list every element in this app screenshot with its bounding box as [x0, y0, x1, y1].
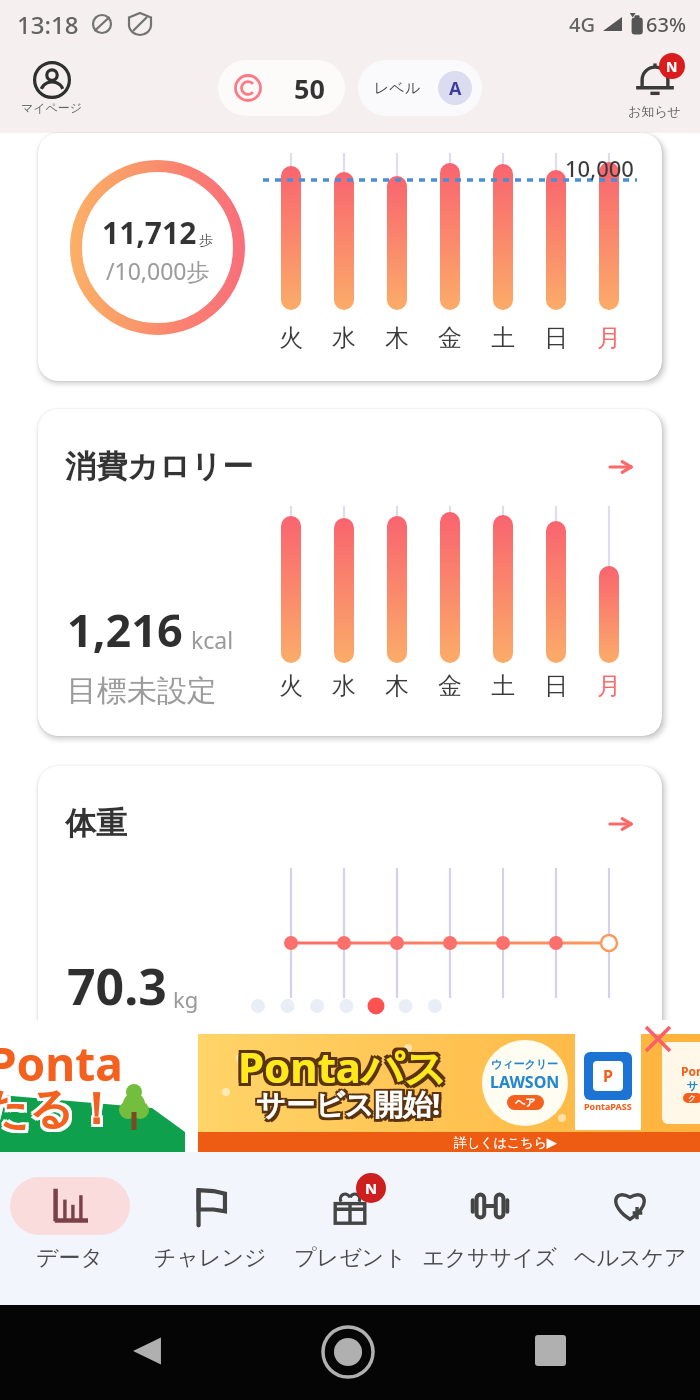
staticText: 木 [385, 671, 409, 701]
staticText: Pontaパス [241, 1041, 450, 1098]
staticText: 体重 [65, 804, 127, 843]
staticText: チャレンジ [154, 1244, 267, 1272]
staticText: 70.3 [67, 952, 167, 1020]
staticText: レベル [374, 79, 421, 98]
button[interactable]: 詳細を見る [609, 455, 633, 479]
staticText: サービス開始! [259, 1087, 444, 1127]
staticText: サービス開始! [259, 1084, 444, 1124]
button[interactable]: 戻る [131, 1334, 165, 1368]
staticText: 水 [332, 323, 356, 353]
staticText: プレゼント [294, 1244, 407, 1272]
staticText: 火 [279, 671, 303, 701]
staticText: A [449, 76, 462, 101]
staticText: たる！ [0, 1080, 122, 1135]
staticText: ウィークリー [491, 1057, 559, 1071]
staticText: Pontaパス [238, 1041, 447, 1098]
staticText: たる！ [0, 1082, 122, 1137]
staticText: Ponta [0, 1030, 123, 1093]
staticText: 4G [569, 11, 595, 38]
button[interactable]: マイページ [21, 61, 83, 115]
staticText: サービス開始! [259, 1082, 444, 1122]
staticText: 歩 [199, 232, 213, 250]
staticText: kg [173, 984, 199, 1014]
button[interactable]: 履歴 [535, 1335, 566, 1366]
button[interactable]: 体重 [38, 766, 662, 1066]
staticText: N [666, 57, 678, 76]
staticText: エクササイズ [422, 1244, 558, 1272]
staticText: Pontaパス [235, 1038, 444, 1095]
staticText: kcal [191, 624, 234, 655]
button[interactable]: お知らせ [628, 57, 681, 119]
staticText: LAWSON [490, 1071, 560, 1093]
staticText: たる！ [0, 1085, 119, 1140]
staticText: サービス開始! [254, 1087, 439, 1127]
button[interactable]: Pontaパス [198, 1034, 700, 1152]
staticText: Ponta [0, 1035, 126, 1098]
staticText: サービス開始! [256, 1082, 441, 1122]
staticText: 金 [438, 323, 462, 353]
staticText: サービス開始! [256, 1084, 441, 1124]
staticText: Ponta [0, 1035, 123, 1098]
staticText: たる！ [0, 1082, 117, 1137]
staticText: 水 [332, 671, 356, 701]
staticText: 土 [491, 323, 515, 353]
button[interactable]: ヘルスケア [560, 1152, 700, 1305]
staticText: /10,000歩 [106, 255, 210, 286]
staticText: 月 [597, 323, 621, 353]
staticText: たる！ [0, 1080, 117, 1135]
staticText: 土 [491, 671, 515, 701]
staticText: サービス開始! [254, 1082, 439, 1122]
staticText: ク [688, 1093, 697, 1103]
button[interactable]: ホーム [321, 1325, 375, 1379]
staticText: Pontaパス [238, 1038, 447, 1095]
staticText: 火 [279, 323, 303, 353]
staticText: Pontaパス [235, 1035, 444, 1092]
button[interactable]: 50 [218, 60, 345, 116]
staticText: 月 [597, 671, 621, 701]
staticText: Ponta [0, 1032, 126, 1095]
button[interactable]: データ [0, 1152, 140, 1305]
staticText: サービス開始! [256, 1087, 441, 1127]
button[interactable]: 11,712 [38, 133, 662, 381]
button[interactable]: 閉じる [643, 1024, 673, 1054]
staticText: たる！ [0, 1082, 119, 1137]
button[interactable]: N [280, 1152, 420, 1305]
staticText: たる！ [0, 1085, 117, 1140]
staticText: PontaPASS [584, 1100, 632, 1112]
button[interactable]: 詳細を見る [609, 812, 633, 836]
staticText: ヘア [515, 1096, 536, 1109]
staticText: 1,216 [67, 599, 183, 660]
staticText: マイページ [21, 100, 83, 115]
staticText: N [365, 1178, 378, 1198]
staticText: 13:18 [17, 8, 79, 41]
staticText: Pontaパス [235, 1041, 444, 1098]
button[interactable]: 消費カロリー [38, 409, 662, 736]
staticText: 10,000 [565, 153, 634, 183]
staticText: 木 [385, 323, 409, 353]
button[interactable]: チャレンジ [140, 1152, 280, 1305]
staticText: 50 [294, 70, 325, 107]
staticText: P [603, 1065, 613, 1087]
staticText: 消費カロリー [65, 447, 254, 486]
staticText: 11,712 [102, 212, 197, 253]
staticText: Ponta [0, 1030, 121, 1093]
button[interactable]: レベル [358, 60, 482, 116]
staticText: Ponta [0, 1030, 126, 1093]
staticText: 日 [544, 323, 568, 353]
staticText: Pontaパス [238, 1035, 447, 1092]
staticText: たる！ [0, 1085, 122, 1140]
staticText: Pon [681, 1063, 700, 1079]
staticText: Pontaパス [241, 1035, 450, 1092]
staticText: ヘルスケア [574, 1244, 687, 1272]
staticText: 63% [646, 11, 686, 38]
staticText: お知らせ [628, 103, 681, 119]
staticText: 日 [544, 671, 568, 701]
staticText: Ponta [0, 1032, 123, 1095]
staticText: たる！ [0, 1080, 119, 1135]
staticText: Ponta [0, 1032, 121, 1095]
staticText: データ [36, 1244, 104, 1272]
button[interactable]: エクササイズ [420, 1152, 560, 1305]
staticText: 詳しくはこちら▶ [454, 1134, 557, 1150]
staticText: 金 [438, 671, 462, 701]
staticText: 目標未設定 [67, 672, 217, 710]
